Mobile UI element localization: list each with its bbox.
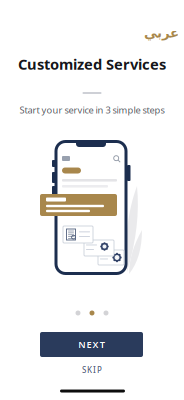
button[interactable]: عربي xyxy=(138,21,183,44)
staticText: Customized Services xyxy=(18,54,166,74)
button[interactable]: NEXT xyxy=(40,332,143,357)
staticText: عربي xyxy=(143,25,178,40)
staticText: NEXT xyxy=(78,338,105,351)
staticText: SKIP xyxy=(82,365,102,375)
staticText: Start your service in 3 simple steps xyxy=(19,104,164,116)
button[interactable]: SKIP xyxy=(68,360,116,380)
